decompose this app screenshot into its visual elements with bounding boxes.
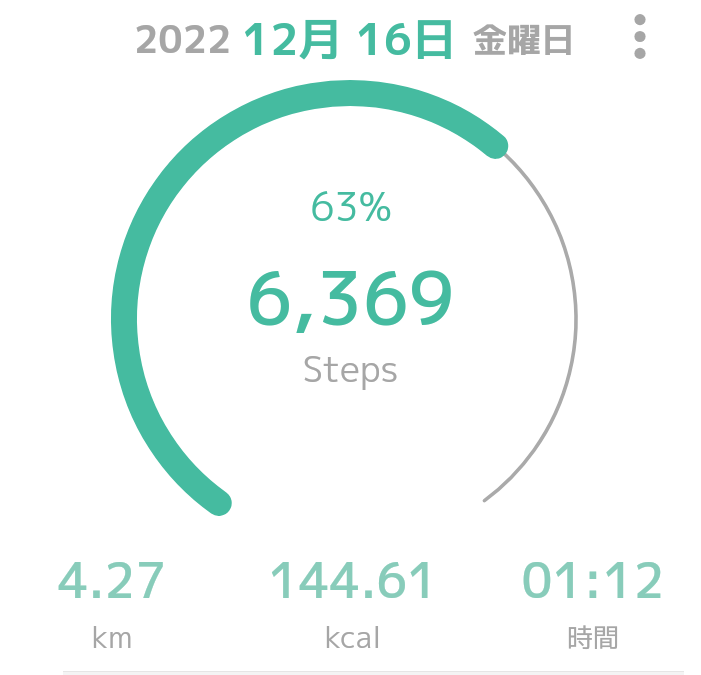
staticText: km xyxy=(0,616,227,658)
staticText: 4.27 xyxy=(0,545,227,613)
staticText: Steps xyxy=(302,343,399,393)
staticText: kcal xyxy=(238,616,468,658)
button[interactable]: 63% xyxy=(246,179,455,399)
button[interactable]: 4.27 xyxy=(0,545,227,658)
button[interactable]: 2022 xyxy=(134,0,575,76)
staticText: 01:12 xyxy=(478,545,701,613)
staticText: 2022 xyxy=(134,12,232,65)
staticText: 12月 16日 xyxy=(242,8,457,69)
staticText: 144.61 xyxy=(238,545,468,613)
staticText: 金曜日 xyxy=(473,15,575,62)
button[interactable]: 01:12 xyxy=(478,545,701,652)
button[interactable]: More options xyxy=(610,6,670,66)
staticText: 63% xyxy=(310,179,392,233)
staticText: 6,369 xyxy=(246,247,455,349)
button[interactable]: 144.61 xyxy=(238,545,468,658)
staticText: 時間 xyxy=(478,619,701,655)
